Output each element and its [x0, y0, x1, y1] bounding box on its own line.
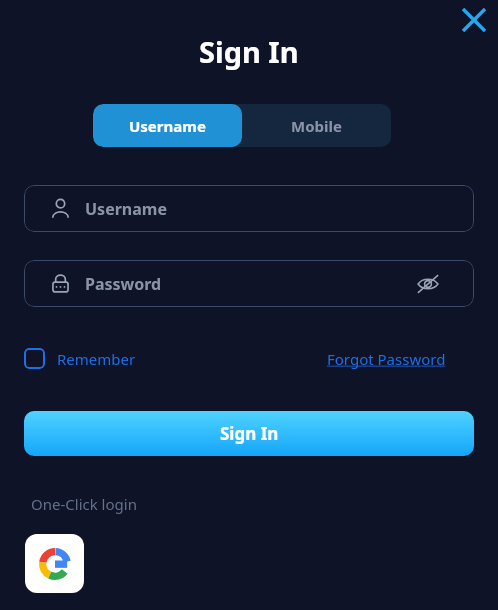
button[interactable]: Forgot Password — [327, 347, 446, 370]
button[interactable]: Remember — [24, 346, 136, 371]
staticText: One-Click login — [31, 494, 137, 514]
button[interactable]: Password — [24, 260, 474, 307]
staticText: Mobile — [291, 116, 342, 136]
button[interactable]: Username — [24, 185, 474, 232]
staticText: Forgot Password — [327, 349, 446, 369]
staticText: Sign In — [199, 32, 299, 71]
button[interactable]: Show password — [409, 265, 447, 303]
staticText: Sign In — [220, 422, 279, 445]
button[interactable]: Username — [93, 104, 242, 147]
button[interactable]: Close — [455, 1, 493, 39]
staticText: Remember — [57, 349, 136, 369]
staticText: Password — [85, 273, 162, 295]
button[interactable]: Mobile — [242, 104, 391, 147]
staticText: Username — [129, 116, 206, 136]
button[interactable]: Sign in with Google — [25, 534, 84, 593]
staticText: Username — [85, 198, 167, 220]
button[interactable]: Sign In — [24, 411, 474, 456]
